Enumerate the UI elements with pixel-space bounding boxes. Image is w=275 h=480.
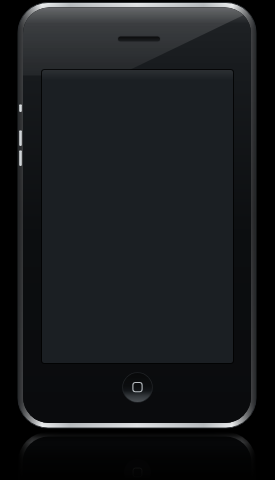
button[interactable]: iPhone device showing a blank screen [0,0,275,480]
